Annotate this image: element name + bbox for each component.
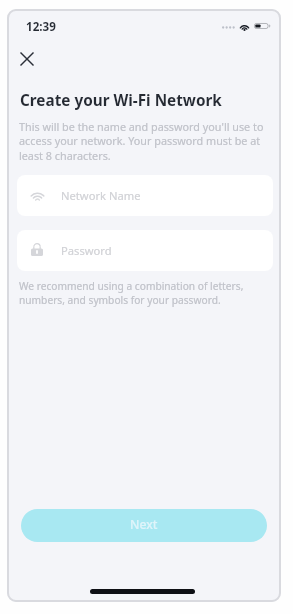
- staticText: Next: [130, 516, 158, 533]
- button[interactable]: Password: [17, 230, 273, 271]
- staticText: Create your Wi-Fi Network: [20, 90, 222, 111]
- button[interactable]: Close: [15, 47, 39, 71]
- button[interactable]: Network Name: [17, 175, 273, 216]
- button[interactable]: Next: [21, 509, 267, 542]
- staticText: We recommend using a combination of lett…: [19, 279, 255, 307]
- staticText: 12:39: [26, 19, 56, 35]
- staticText: Password: [61, 243, 112, 258]
- staticText: This will be the name and password you'l…: [19, 119, 270, 164]
- staticText: Network Name: [61, 188, 141, 203]
